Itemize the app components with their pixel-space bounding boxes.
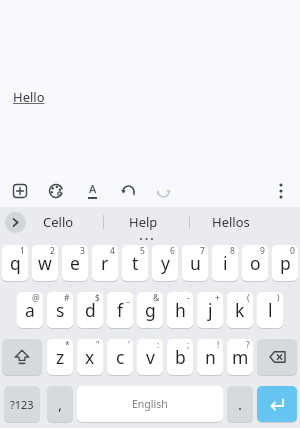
- button[interactable]: q: [2, 245, 28, 281]
- staticText: b: [175, 345, 186, 369]
- staticText: j: [208, 298, 213, 322]
- button[interactable]: h: [167, 292, 193, 328]
- staticText: 1: [20, 245, 25, 257]
- staticText: Hello: [13, 88, 45, 106]
- staticText: +: [215, 292, 220, 304]
- button[interactable]: [2, 172, 38, 208]
- button[interactable]: c: [107, 339, 133, 375]
- button[interactable]: y: [152, 245, 178, 281]
- staticText: 0: [290, 245, 295, 257]
- staticText: :: [157, 339, 160, 351]
- staticText: 6: [170, 245, 175, 257]
- staticText: 5: [140, 245, 145, 257]
- staticText: English: [132, 397, 168, 411]
- staticText: 3: [80, 245, 85, 257]
- button[interactable]: s: [47, 292, 73, 328]
- staticText: g: [145, 298, 156, 322]
- staticText: Help: [129, 213, 158, 231]
- button[interactable]: b: [167, 339, 193, 375]
- staticText: p: [280, 251, 291, 275]
- button[interactable]: A: [74, 172, 110, 208]
- staticText: &: [153, 292, 160, 304]
- button[interactable]: v: [137, 339, 163, 375]
- staticText: Cello: [43, 213, 74, 231]
- staticText: .: [238, 394, 243, 414]
- staticText: 2: [50, 245, 55, 257]
- button[interactable]: z: [47, 339, 73, 375]
- staticText: k: [235, 298, 245, 322]
- staticText: x: [85, 345, 95, 369]
- button[interactable]: a: [17, 292, 43, 328]
- button[interactable]: n: [197, 339, 223, 375]
- staticText: a: [25, 298, 35, 322]
- staticText: t: [132, 251, 139, 275]
- staticText: u: [190, 251, 201, 275]
- button[interactable]: [2, 339, 42, 375]
- button[interactable]: o: [242, 245, 268, 281]
- staticText: h: [175, 298, 186, 322]
- button[interactable]: ?123: [4, 386, 40, 422]
- button[interactable]: d: [77, 292, 103, 328]
- staticText: f: [117, 298, 124, 322]
- button[interactable]: English: [77, 386, 223, 422]
- staticText: n: [205, 345, 216, 369]
- button[interactable]: [5, 212, 26, 233]
- button[interactable]: m: [227, 339, 253, 375]
- staticText: 9: [260, 245, 265, 257]
- button[interactable]: i: [212, 245, 238, 281]
- staticText: w: [38, 251, 52, 275]
- staticText: 7: [200, 245, 205, 257]
- button[interactable]: p: [272, 245, 298, 281]
- staticText: v: [146, 345, 155, 369]
- button[interactable]: j: [197, 292, 223, 328]
- button[interactable]: ,: [47, 386, 73, 422]
- staticText: -: [187, 292, 190, 304]
- staticText: (: [247, 292, 250, 304]
- staticText: ): [277, 292, 280, 304]
- staticText: ?123: [10, 397, 34, 412]
- button[interactable]: l: [257, 292, 283, 328]
- button[interactable]: f: [107, 292, 133, 328]
- staticText: ': [128, 339, 130, 351]
- button[interactable]: k: [227, 292, 253, 328]
- button[interactable]: Cello: [31, 207, 86, 237]
- button[interactable]: t: [122, 245, 148, 281]
- button[interactable]: [110, 172, 146, 208]
- staticText: *: [65, 339, 70, 351]
- button[interactable]: r: [92, 245, 118, 281]
- staticText: _: [126, 292, 130, 304]
- button[interactable]: [257, 339, 297, 375]
- staticText: o: [250, 251, 261, 275]
- staticText: ;: [187, 339, 190, 351]
- staticText: 8: [230, 245, 235, 257]
- button[interactable]: [146, 172, 182, 208]
- staticText: 4: [110, 245, 115, 257]
- button[interactable]: w: [32, 245, 58, 281]
- button[interactable]: Help: [103, 207, 183, 237]
- staticText: r: [101, 251, 109, 275]
- staticText: ?: [246, 339, 250, 351]
- button[interactable]: x: [77, 339, 103, 375]
- staticText: #: [64, 292, 70, 304]
- button[interactable]: [257, 386, 297, 422]
- staticText: m: [232, 345, 249, 369]
- staticText: !: [217, 339, 220, 351]
- button[interactable]: Hellos: [190, 207, 272, 237]
- button[interactable]: e: [62, 245, 88, 281]
- staticText: q: [10, 251, 21, 275]
- staticText: z: [56, 345, 65, 369]
- button[interactable]: [263, 172, 299, 208]
- button[interactable]: .: [227, 386, 253, 422]
- staticText: ": [96, 339, 100, 351]
- staticText: d: [85, 298, 96, 322]
- staticText: s: [56, 298, 65, 322]
- staticText: A: [89, 181, 97, 196]
- staticText: c: [116, 345, 125, 369]
- staticText: i: [223, 251, 228, 275]
- button[interactable]: g: [137, 292, 163, 328]
- staticText: ,: [58, 394, 63, 414]
- button[interactable]: [38, 172, 74, 208]
- staticText: l: [268, 298, 273, 322]
- button[interactable]: u: [182, 245, 208, 281]
- staticText: y: [161, 251, 170, 275]
